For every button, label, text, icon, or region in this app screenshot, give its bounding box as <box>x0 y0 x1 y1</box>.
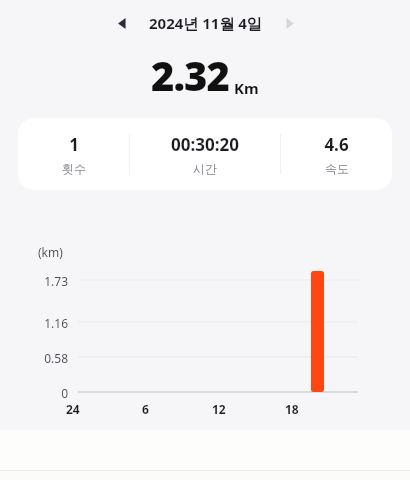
staticText: 속도 <box>325 161 349 176</box>
staticText: 0.58 <box>44 350 68 366</box>
staticText: 18 <box>285 401 299 417</box>
staticText: 4.6 <box>324 133 349 156</box>
staticText: 1 <box>69 133 79 156</box>
button[interactable]: 1 <box>18 118 129 190</box>
staticText: 시간 <box>193 161 217 176</box>
button[interactable]: 00:30:20 <box>130 118 280 190</box>
button[interactable]: Previous day <box>109 11 135 35</box>
staticText: 1.16 <box>44 315 68 331</box>
staticText: 00:30:20 <box>171 133 239 156</box>
staticText: Km <box>234 78 259 98</box>
staticText: (km) <box>38 244 63 260</box>
staticText: 2024년 11월 4일 <box>149 13 262 33</box>
staticText: 24 <box>66 401 80 417</box>
staticText: 1.73 <box>44 273 68 289</box>
staticText: 6 <box>142 401 149 417</box>
staticText: 2.32 <box>151 48 229 102</box>
button[interactable]: Next day <box>276 11 302 35</box>
staticText: 0 <box>61 385 68 401</box>
staticText: 12 <box>212 401 226 417</box>
button[interactable]: 4.6 <box>281 118 392 190</box>
staticText: 횟수 <box>62 161 86 176</box>
